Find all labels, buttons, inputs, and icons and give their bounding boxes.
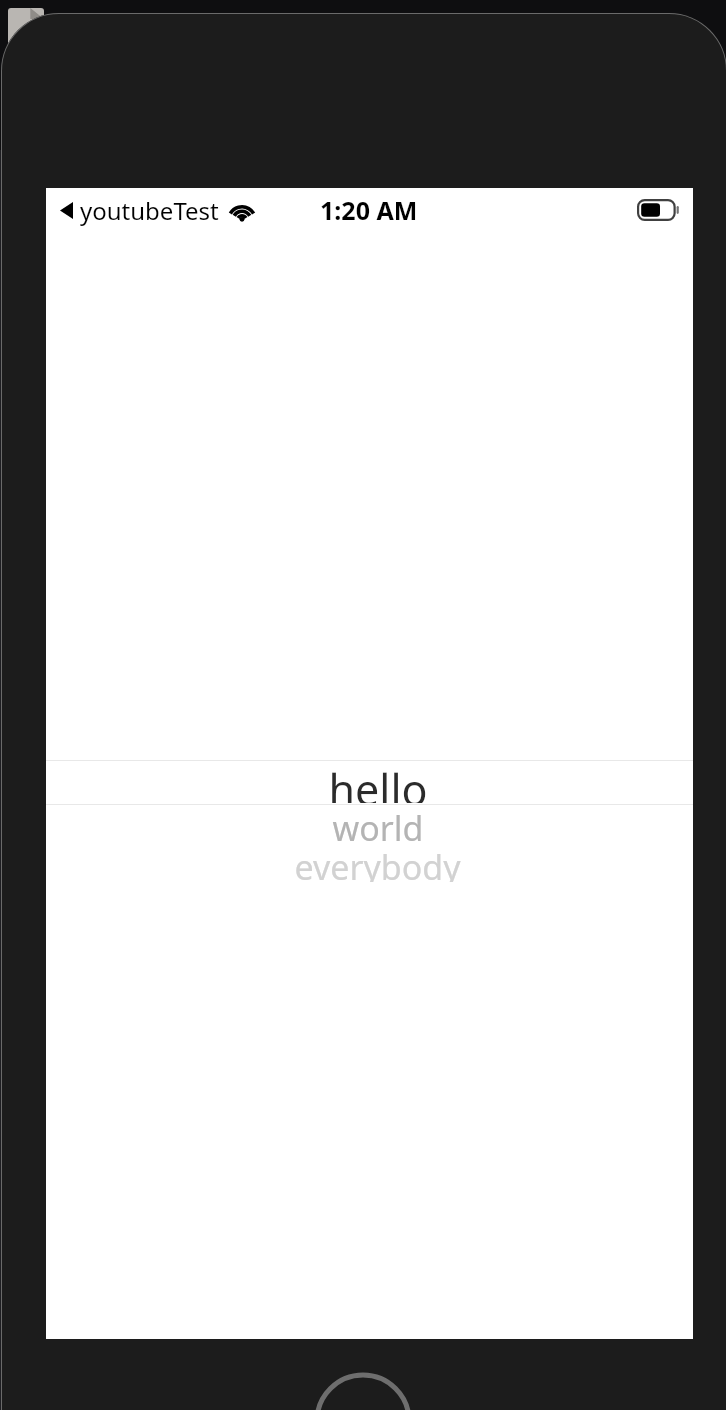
other: Wi-Fi: [228, 200, 256, 222]
staticText: Vi: [52, 12, 71, 42]
button[interactable]: Back: [60, 194, 262, 227]
other: Battery: [637, 199, 681, 221]
button[interactable]: everybody: [46, 844, 693, 882]
staticText: world: [332, 805, 424, 844]
staticText: everybody: [294, 844, 461, 882]
button[interactable]: hello: [46, 761, 693, 804]
staticText: youtubeTest: [80, 194, 219, 227]
other: Back: [60, 202, 73, 219]
button[interactable]: Home: [315, 1373, 411, 1410]
staticText: 1:20 AM: [320, 193, 418, 227]
button[interactable]: world: [46, 805, 693, 844]
staticText: hello: [328, 760, 428, 803]
